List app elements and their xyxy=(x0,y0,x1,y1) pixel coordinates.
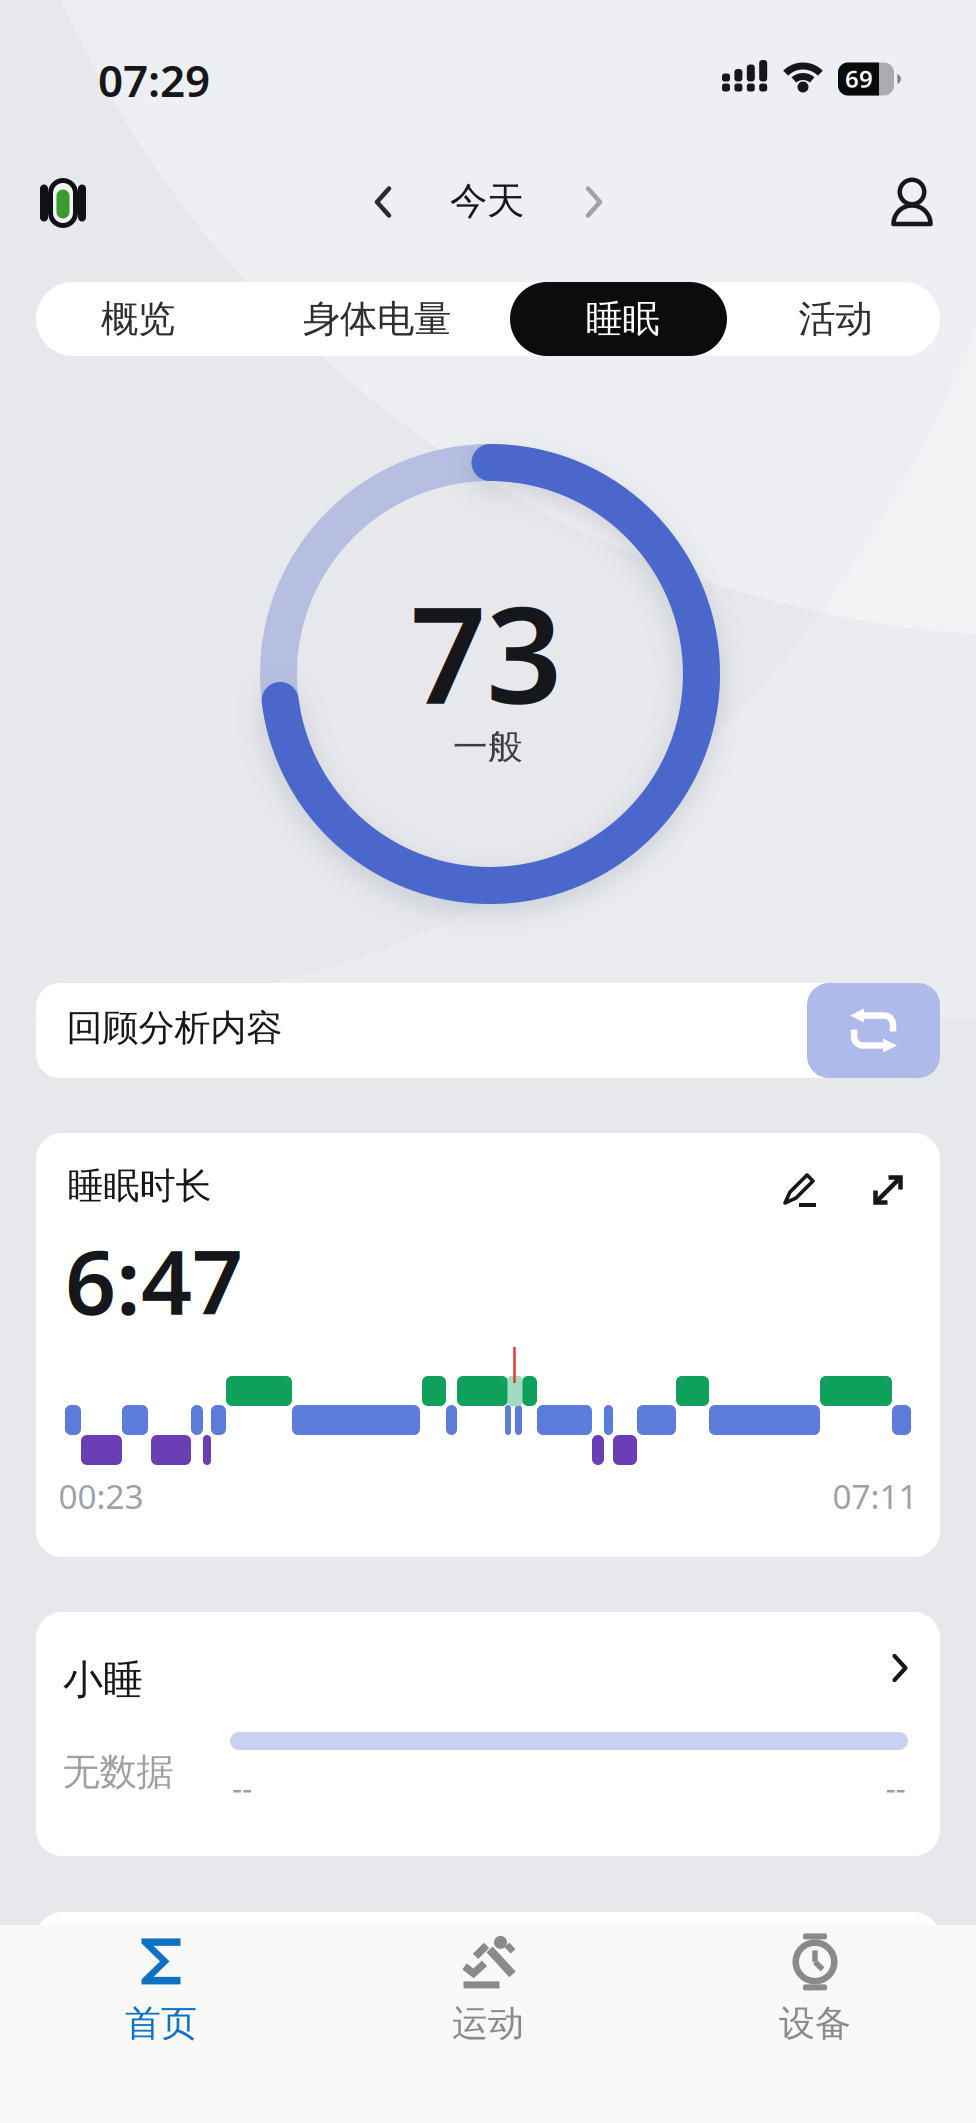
staticText: 首页 xyxy=(125,2001,197,2046)
button[interactable]: 设备 xyxy=(40,178,86,228)
staticText: 运动 xyxy=(452,2001,524,2046)
button[interactable]: 设备 xyxy=(779,1933,851,2046)
button[interactable]: 首页 xyxy=(125,1938,197,2046)
button[interactable]: 概览 xyxy=(36,282,240,356)
staticText: 00:23 xyxy=(58,1474,143,1518)
staticText: 活动 xyxy=(798,296,872,342)
staticText: -- xyxy=(885,1767,905,1809)
staticText: 设备 xyxy=(779,2001,851,2046)
button[interactable]: 前一天 xyxy=(365,176,401,227)
staticText: 睡眠时长 xyxy=(67,1164,211,1208)
staticText: 小睡 xyxy=(63,1655,143,1704)
staticText: 无数据 xyxy=(62,1749,173,1795)
staticText: 6:47 xyxy=(65,1221,243,1339)
staticText: 69 xyxy=(845,63,873,94)
button[interactable]: 编辑 xyxy=(777,1166,823,1214)
staticText: 07:29 xyxy=(98,51,210,109)
button[interactable]: 展开 xyxy=(865,1167,910,1212)
button[interactable]: 小睡 xyxy=(36,1612,940,1856)
staticText: 回顾分析内容 xyxy=(66,1006,282,1050)
staticText: -- xyxy=(232,1767,252,1809)
staticText: 睡眠 xyxy=(585,296,659,342)
button[interactable]: 身体电量 xyxy=(240,282,514,356)
button[interactable]: 运动 xyxy=(452,1935,524,2046)
staticText: 一般 xyxy=(453,726,523,768)
button[interactable]: 睡眠 xyxy=(514,282,731,356)
button[interactable]: 活动 xyxy=(731,282,940,356)
staticText: 07:11 xyxy=(832,1474,917,1518)
staticText: 身体电量 xyxy=(303,296,451,342)
button[interactable]: 个人资料 xyxy=(891,177,933,226)
staticText: 概览 xyxy=(101,296,175,342)
button[interactable]: 换一换 xyxy=(807,983,940,1078)
staticText: 今天 xyxy=(450,178,524,224)
staticText: 73 xyxy=(410,563,562,741)
button[interactable]: 后一天 xyxy=(576,176,612,227)
button[interactable]: 今天 xyxy=(450,178,524,224)
